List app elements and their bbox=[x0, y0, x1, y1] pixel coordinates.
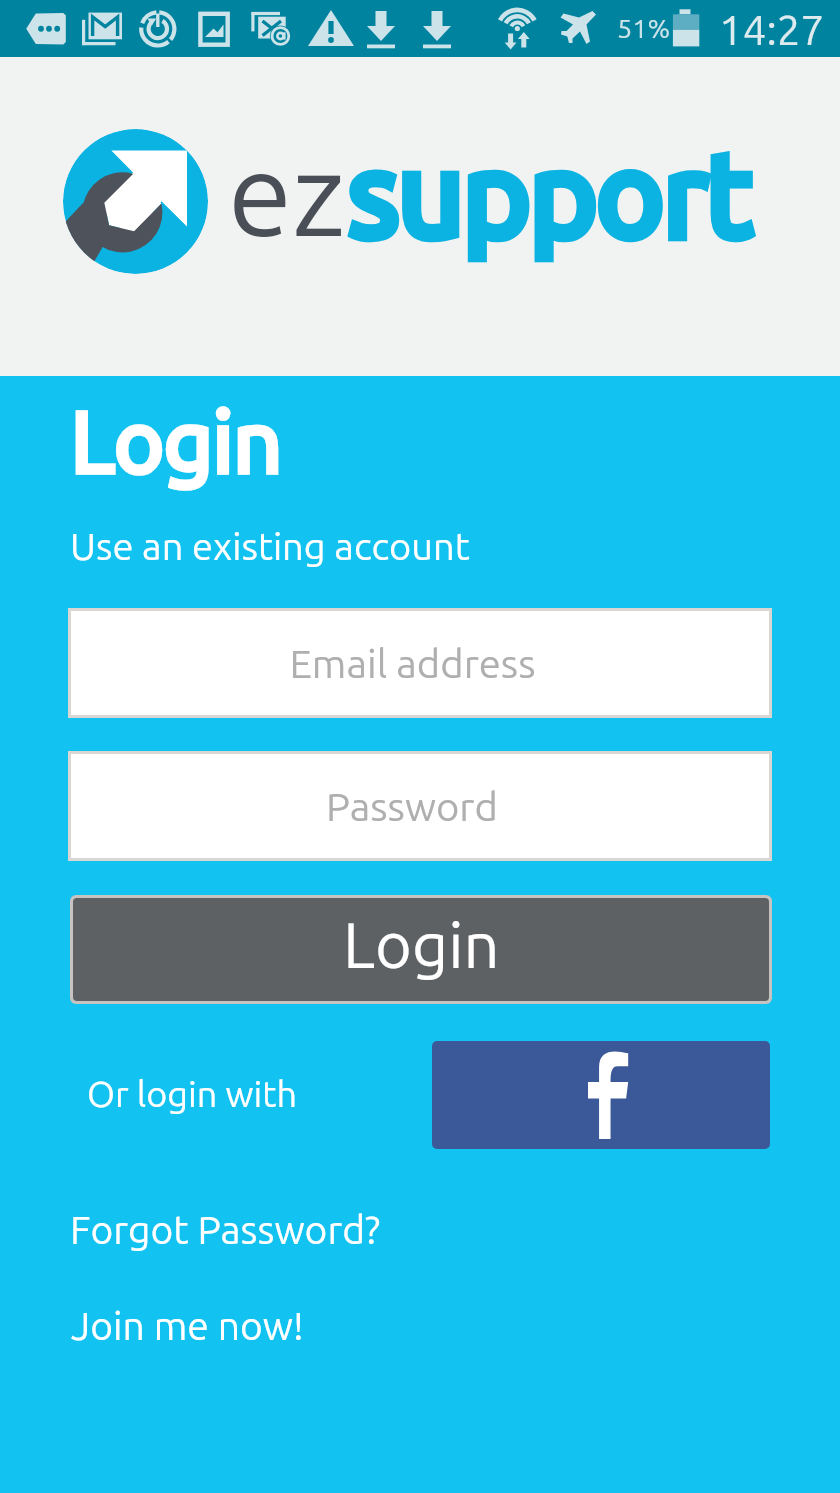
button[interactable]: Email address bbox=[71, 611, 769, 715]
staticText: support bbox=[349, 130, 752, 258]
button[interactable]: Login with Facebook bbox=[432, 1041, 770, 1149]
button[interactable]: Password bbox=[71, 754, 769, 858]
staticText: Login bbox=[71, 393, 283, 488]
staticText: Login bbox=[71, 393, 283, 488]
staticText: ez bbox=[228, 128, 346, 258]
button[interactable]: Login bbox=[73, 898, 769, 1001]
staticText: Use an existing account bbox=[70, 525, 470, 568]
staticText: Password bbox=[326, 784, 498, 829]
staticText: support bbox=[349, 130, 752, 258]
staticText: 14:27 bbox=[719, 6, 825, 53]
staticText: 51% bbox=[617, 13, 671, 43]
button[interactable]: Or login with bbox=[87, 1073, 297, 1113]
button[interactable]: Join me now! bbox=[71, 1304, 304, 1348]
button[interactable]: Forgot Password? bbox=[70, 1208, 381, 1252]
staticText: Email address bbox=[289, 641, 536, 686]
staticText: Login bbox=[343, 909, 500, 980]
